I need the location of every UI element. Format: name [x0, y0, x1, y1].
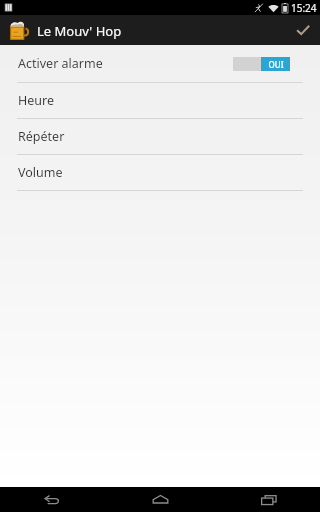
staticText: Le Mouv' Hop [37, 22, 122, 40]
staticText: OUI [268, 59, 284, 70]
button[interactable]: Retour [22, 487, 80, 512]
staticText: 15:24 [291, 1, 317, 15]
button[interactable]: Heure [0, 83, 320, 118]
button[interactable]: Volume [0, 155, 320, 190]
staticText: Heure [18, 92, 55, 109]
staticText: Répéter [18, 128, 65, 145]
staticText: Volume [18, 164, 63, 181]
button[interactable]: Valider [286, 15, 320, 45]
button[interactable]: Répéter [0, 119, 320, 154]
button[interactable]: Le Mouv' Hop [8, 20, 122, 41]
button[interactable]: Accueil [131, 487, 189, 512]
staticText: Activer alarme [18, 55, 103, 72]
button[interactable]: Activer alarme [233, 57, 290, 71]
button[interactable]: Applications récentes [240, 487, 298, 512]
button[interactable]: Activer alarme [0, 45, 320, 82]
